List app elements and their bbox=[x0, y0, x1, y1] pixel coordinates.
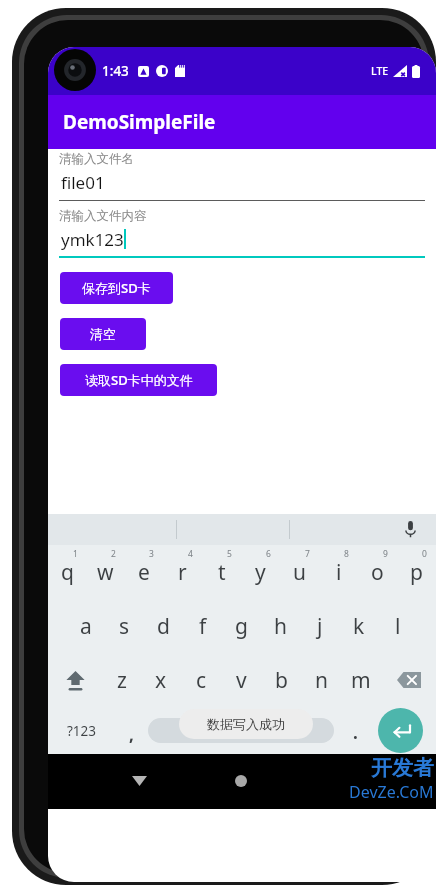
staticText: . bbox=[353, 721, 358, 744]
staticText: j bbox=[317, 612, 323, 641]
staticText: file01 bbox=[61, 171, 105, 194]
staticText: f bbox=[199, 612, 207, 641]
button[interactable]: a bbox=[67, 599, 105, 653]
button[interactable]: 2 bbox=[86, 545, 124, 599]
button[interactable]: 1 bbox=[48, 545, 86, 599]
button[interactable]: Backspace bbox=[381, 653, 436, 707]
staticText: t bbox=[218, 558, 226, 587]
button[interactable]: 3 bbox=[124, 545, 163, 599]
button[interactable]: x bbox=[141, 653, 181, 707]
staticText: o bbox=[371, 558, 384, 587]
staticText: 清输入文件内容 bbox=[59, 208, 147, 224]
button[interactable]: s bbox=[105, 599, 144, 653]
button[interactable]: , bbox=[114, 707, 148, 754]
staticText: d bbox=[157, 612, 170, 641]
staticText: 读取SD卡中的文件 bbox=[85, 371, 193, 389]
staticText: DevZe.CoM bbox=[349, 781, 434, 803]
staticText: 1 bbox=[73, 548, 78, 560]
staticText: ?123 bbox=[67, 722, 97, 740]
staticText: DemoSimpleFile bbox=[63, 109, 216, 135]
staticText: 数据写入成功 bbox=[207, 716, 285, 732]
button[interactable]: f bbox=[183, 599, 222, 653]
staticText: x bbox=[155, 666, 167, 695]
staticText: 7 bbox=[305, 548, 310, 560]
button[interactable]: 9 bbox=[358, 545, 397, 599]
staticText: e bbox=[138, 558, 150, 587]
staticText: w bbox=[97, 558, 114, 587]
staticText: l bbox=[395, 612, 401, 641]
staticText: 6 bbox=[266, 548, 271, 560]
button[interactable]: Shift bbox=[48, 653, 102, 707]
button[interactable]: n bbox=[301, 653, 341, 707]
button[interactable]: b bbox=[261, 653, 301, 707]
button[interactable]: ?123 bbox=[56, 707, 108, 754]
staticText: b bbox=[275, 666, 288, 695]
staticText: 清输入文件名 bbox=[59, 151, 134, 167]
button[interactable]: 7 bbox=[280, 545, 319, 599]
staticText: , bbox=[129, 723, 134, 746]
button[interactable]: Voice input bbox=[395, 514, 425, 545]
staticText: 2 bbox=[111, 548, 116, 560]
button[interactable]: 8 bbox=[319, 545, 358, 599]
staticText: g bbox=[235, 612, 248, 641]
button[interactable]: 保存到SD卡 bbox=[60, 272, 173, 304]
button[interactable]: 6 bbox=[241, 545, 280, 599]
staticText: s bbox=[119, 612, 130, 641]
button[interactable]: 读取SD卡中的文件 bbox=[60, 364, 217, 396]
button[interactable]: h bbox=[261, 599, 300, 653]
staticText: c bbox=[196, 666, 207, 695]
staticText: 3 bbox=[149, 548, 154, 560]
staticText: 9 bbox=[383, 548, 388, 560]
staticText: 0 bbox=[422, 548, 427, 560]
staticText: 8 bbox=[344, 548, 349, 560]
button[interactable]: 清空 bbox=[60, 318, 146, 350]
button[interactable]: d bbox=[144, 599, 183, 653]
staticText: v bbox=[236, 666, 247, 695]
button[interactable]: 4 bbox=[163, 545, 202, 599]
staticText: ymk123 bbox=[61, 228, 124, 251]
button[interactable]: Hide keyboard bbox=[126, 768, 152, 794]
staticText: u bbox=[293, 558, 306, 587]
button[interactable]: . bbox=[340, 707, 370, 754]
button[interactable]: 0 bbox=[397, 545, 436, 599]
staticText: i bbox=[336, 558, 342, 587]
staticText: q bbox=[61, 558, 74, 587]
staticText: 1:43 bbox=[102, 62, 129, 80]
staticText: 5 bbox=[227, 548, 232, 560]
button[interactable]: v bbox=[221, 653, 261, 707]
staticText: 4 bbox=[188, 548, 193, 560]
button[interactable]: Space bbox=[148, 718, 334, 743]
staticText: z bbox=[117, 666, 127, 695]
staticText: m bbox=[351, 666, 371, 695]
button[interactable]: m bbox=[341, 653, 381, 707]
button[interactable]: l bbox=[378, 599, 417, 653]
button[interactable]: g bbox=[222, 599, 261, 653]
staticText: 开发者 bbox=[371, 755, 434, 781]
button[interactable]: Home bbox=[228, 768, 254, 794]
button[interactable]: z bbox=[102, 653, 141, 707]
staticText: p bbox=[410, 558, 423, 587]
staticText: 清空 bbox=[90, 326, 116, 342]
button[interactable]: k bbox=[339, 599, 378, 653]
staticText: LTE bbox=[371, 64, 389, 78]
staticText: k bbox=[353, 612, 365, 641]
staticText: r bbox=[178, 558, 187, 587]
button[interactable]: Enter bbox=[378, 708, 423, 753]
button[interactable]: c bbox=[181, 653, 221, 707]
staticText: 保存到SD卡 bbox=[82, 279, 151, 297]
staticText: h bbox=[274, 612, 287, 641]
staticText: y bbox=[255, 558, 266, 587]
button[interactable]: 5 bbox=[202, 545, 241, 599]
button[interactable]: j bbox=[300, 599, 339, 653]
staticText: a bbox=[80, 612, 92, 641]
staticText: n bbox=[315, 666, 328, 695]
